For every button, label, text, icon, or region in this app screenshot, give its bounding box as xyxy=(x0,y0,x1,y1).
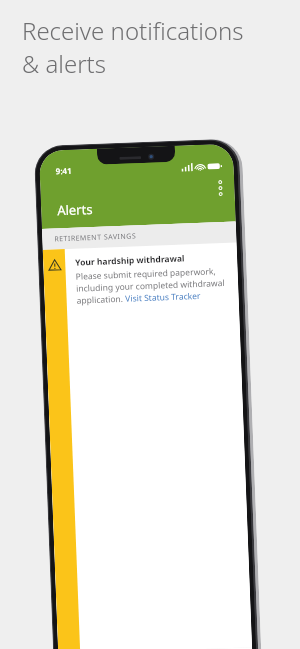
button[interactable]: More xyxy=(213,647,253,649)
button[interactable]: Your hardship withdrawal xyxy=(43,242,252,649)
staticText: & alerts xyxy=(22,47,106,80)
staticText: RETIREMENT SAVINGS xyxy=(54,231,136,244)
staticText: Alerts xyxy=(57,200,93,219)
staticText: Receive notifications xyxy=(22,14,244,47)
staticText: Your hardship withdrawal xyxy=(75,252,185,269)
staticText: Please submit required paperwork, includ… xyxy=(75,265,231,307)
button[interactable]: More options xyxy=(214,176,227,200)
staticText: 9:41 xyxy=(55,165,72,176)
